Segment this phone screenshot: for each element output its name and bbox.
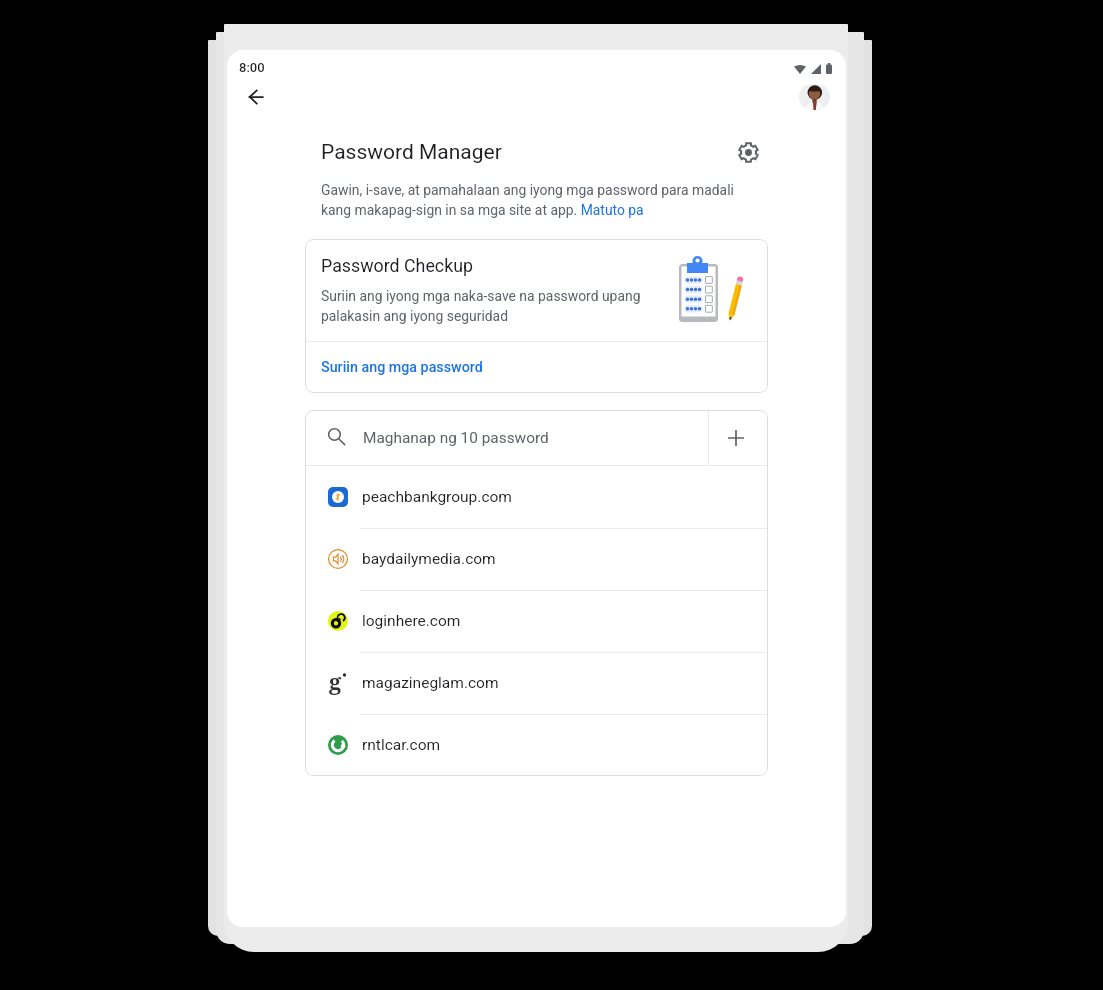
button[interactable]: peachbankgroup.com — [305, 466, 768, 528]
staticText: Password Manager — [321, 140, 502, 165]
button[interactable]: Maghanap ng 10 password — [305, 410, 708, 465]
button[interactable]: Suriin ang mga password — [305, 342, 768, 393]
staticText: baydailymedia.com — [362, 550, 496, 568]
staticText: g — [329, 666, 342, 696]
staticText: rntlcar.com — [362, 736, 441, 754]
button[interactable]: loginhere.com — [305, 590, 768, 652]
staticText: Suriin ang mga password — [321, 359, 483, 376]
staticText: loginhere.com — [362, 612, 461, 630]
button[interactable]: baydailymedia.com — [305, 528, 768, 590]
staticText: Gawin, i-save, at pamahalaan ang iyong m… — [321, 182, 751, 218]
button[interactable]: Back — [238, 84, 274, 110]
button[interactable]: Settings — [731, 135, 765, 169]
button[interactable]: Account — [799, 84, 830, 110]
button[interactable]: g — [305, 652, 768, 714]
staticText: Suriin ang iyong mga naka-save na passwo… — [321, 288, 651, 324]
staticText: Password Checkup — [321, 255, 473, 276]
staticText: peachbankgroup.com — [362, 488, 512, 506]
button[interactable]: rntlcar.com — [305, 714, 768, 776]
staticText: Maghanap ng 10 password — [363, 429, 549, 447]
button[interactable]: Add password — [709, 410, 768, 465]
staticText: 8:00 — [239, 60, 265, 75]
staticText: magazineglam.com — [362, 674, 499, 692]
